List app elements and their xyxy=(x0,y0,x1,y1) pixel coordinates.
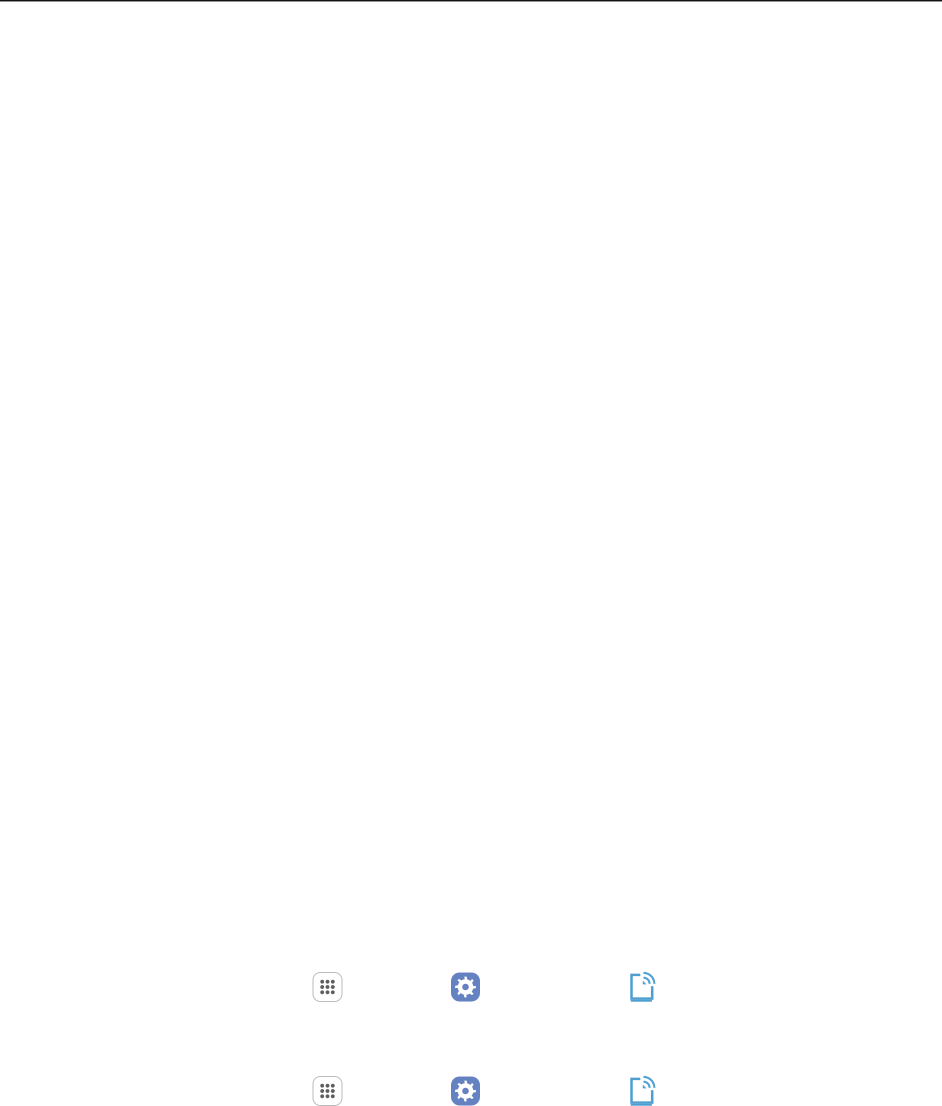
button[interactable]: Share to device xyxy=(629,1075,654,1106)
button[interactable]: Settings xyxy=(451,971,480,1002)
button[interactable]: Settings xyxy=(451,1075,480,1106)
button[interactable]: Share to device xyxy=(629,971,654,1002)
button[interactable]: All apps xyxy=(313,971,342,1002)
button[interactable]: All apps xyxy=(313,1075,342,1106)
